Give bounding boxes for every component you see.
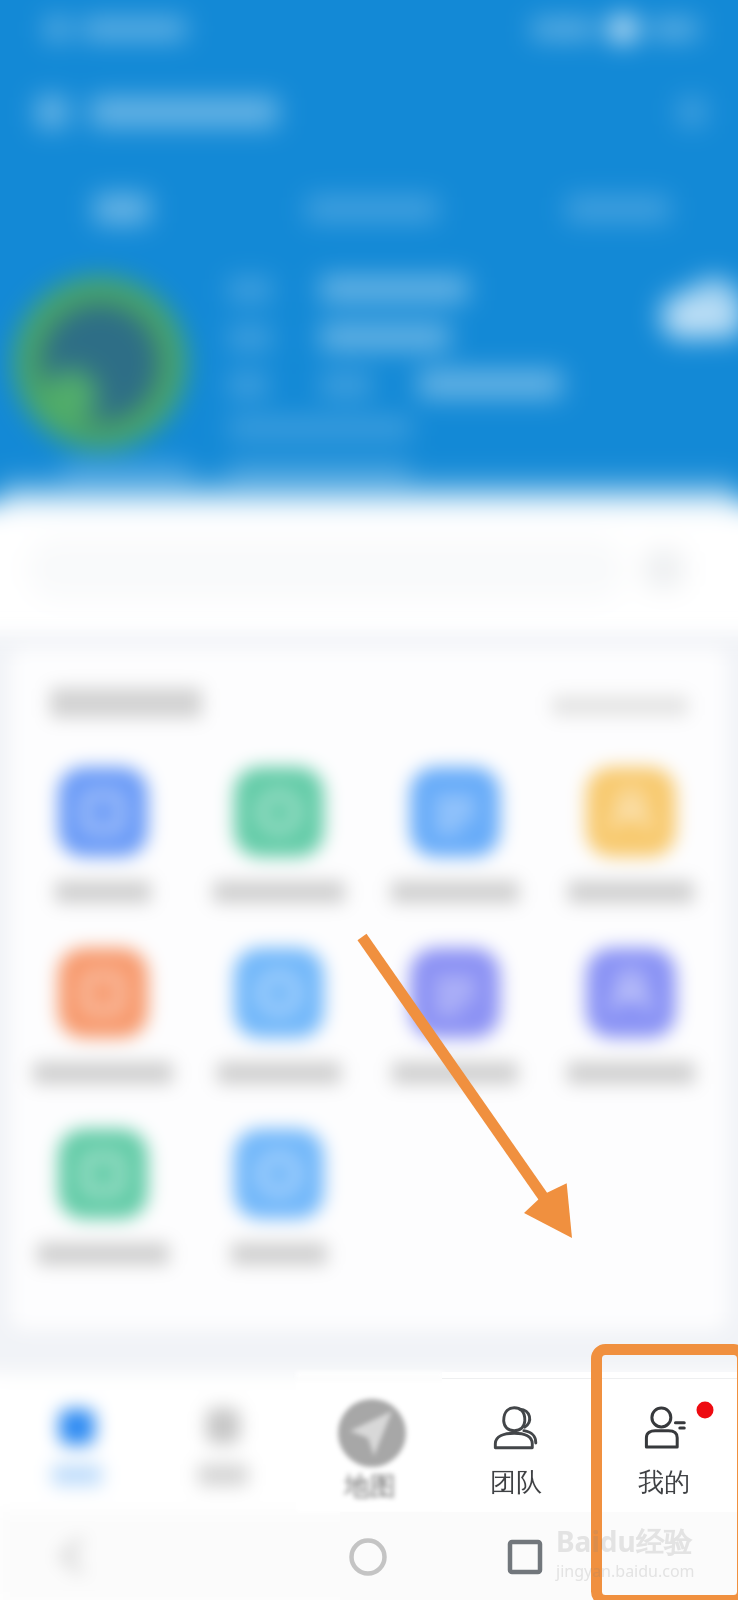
staticText: Baidu经验 [556,1522,692,1560]
staticText: 我的 [638,1466,690,1499]
button[interactable] [0,1372,154,1512]
button[interactable] [154,1372,302,1512]
button[interactable]: 地图 [296,1372,444,1512]
other: 团队 [494,1406,538,1450]
button[interactable]: 我的 [590,1378,738,1512]
staticText: 团队 [490,1466,542,1499]
staticText: 地图 [344,1470,396,1503]
other: 我的 [642,1406,686,1450]
button[interactable]: 团队 [442,1378,590,1512]
staticText: jingyan.baidu.com [556,1560,695,1582]
button [442,1372,738,1512]
